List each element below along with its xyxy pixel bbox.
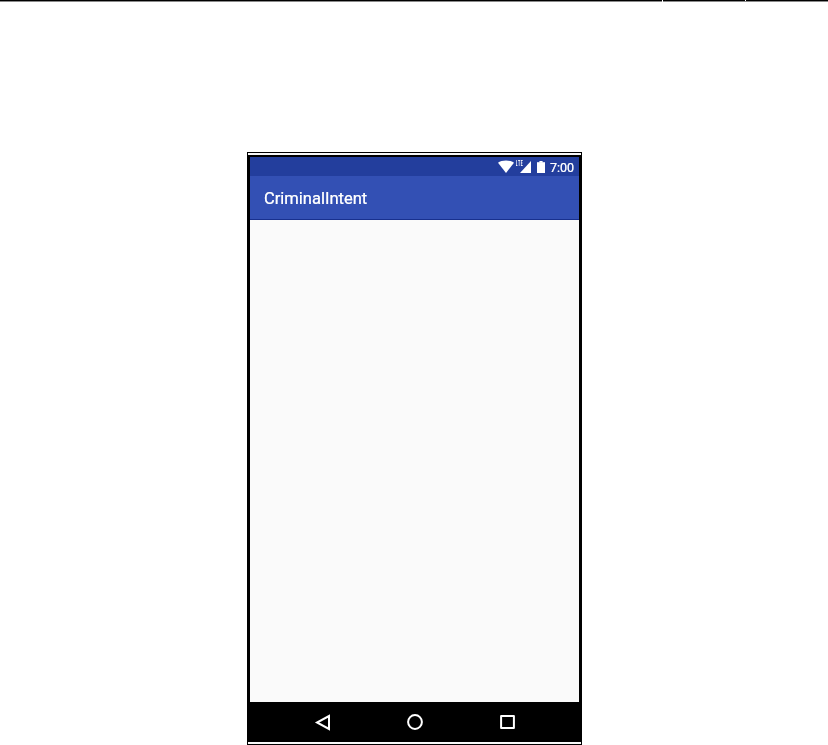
- button[interactable]: Back: [299, 702, 347, 742]
- button[interactable]: Recent apps: [483, 702, 531, 742]
- staticText: 7:00: [550, 160, 575, 175]
- button[interactable]: CriminalIntent: [250, 176, 579, 220]
- button[interactable]: Home: [391, 702, 439, 742]
- staticText: CriminalIntent: [264, 189, 368, 208]
